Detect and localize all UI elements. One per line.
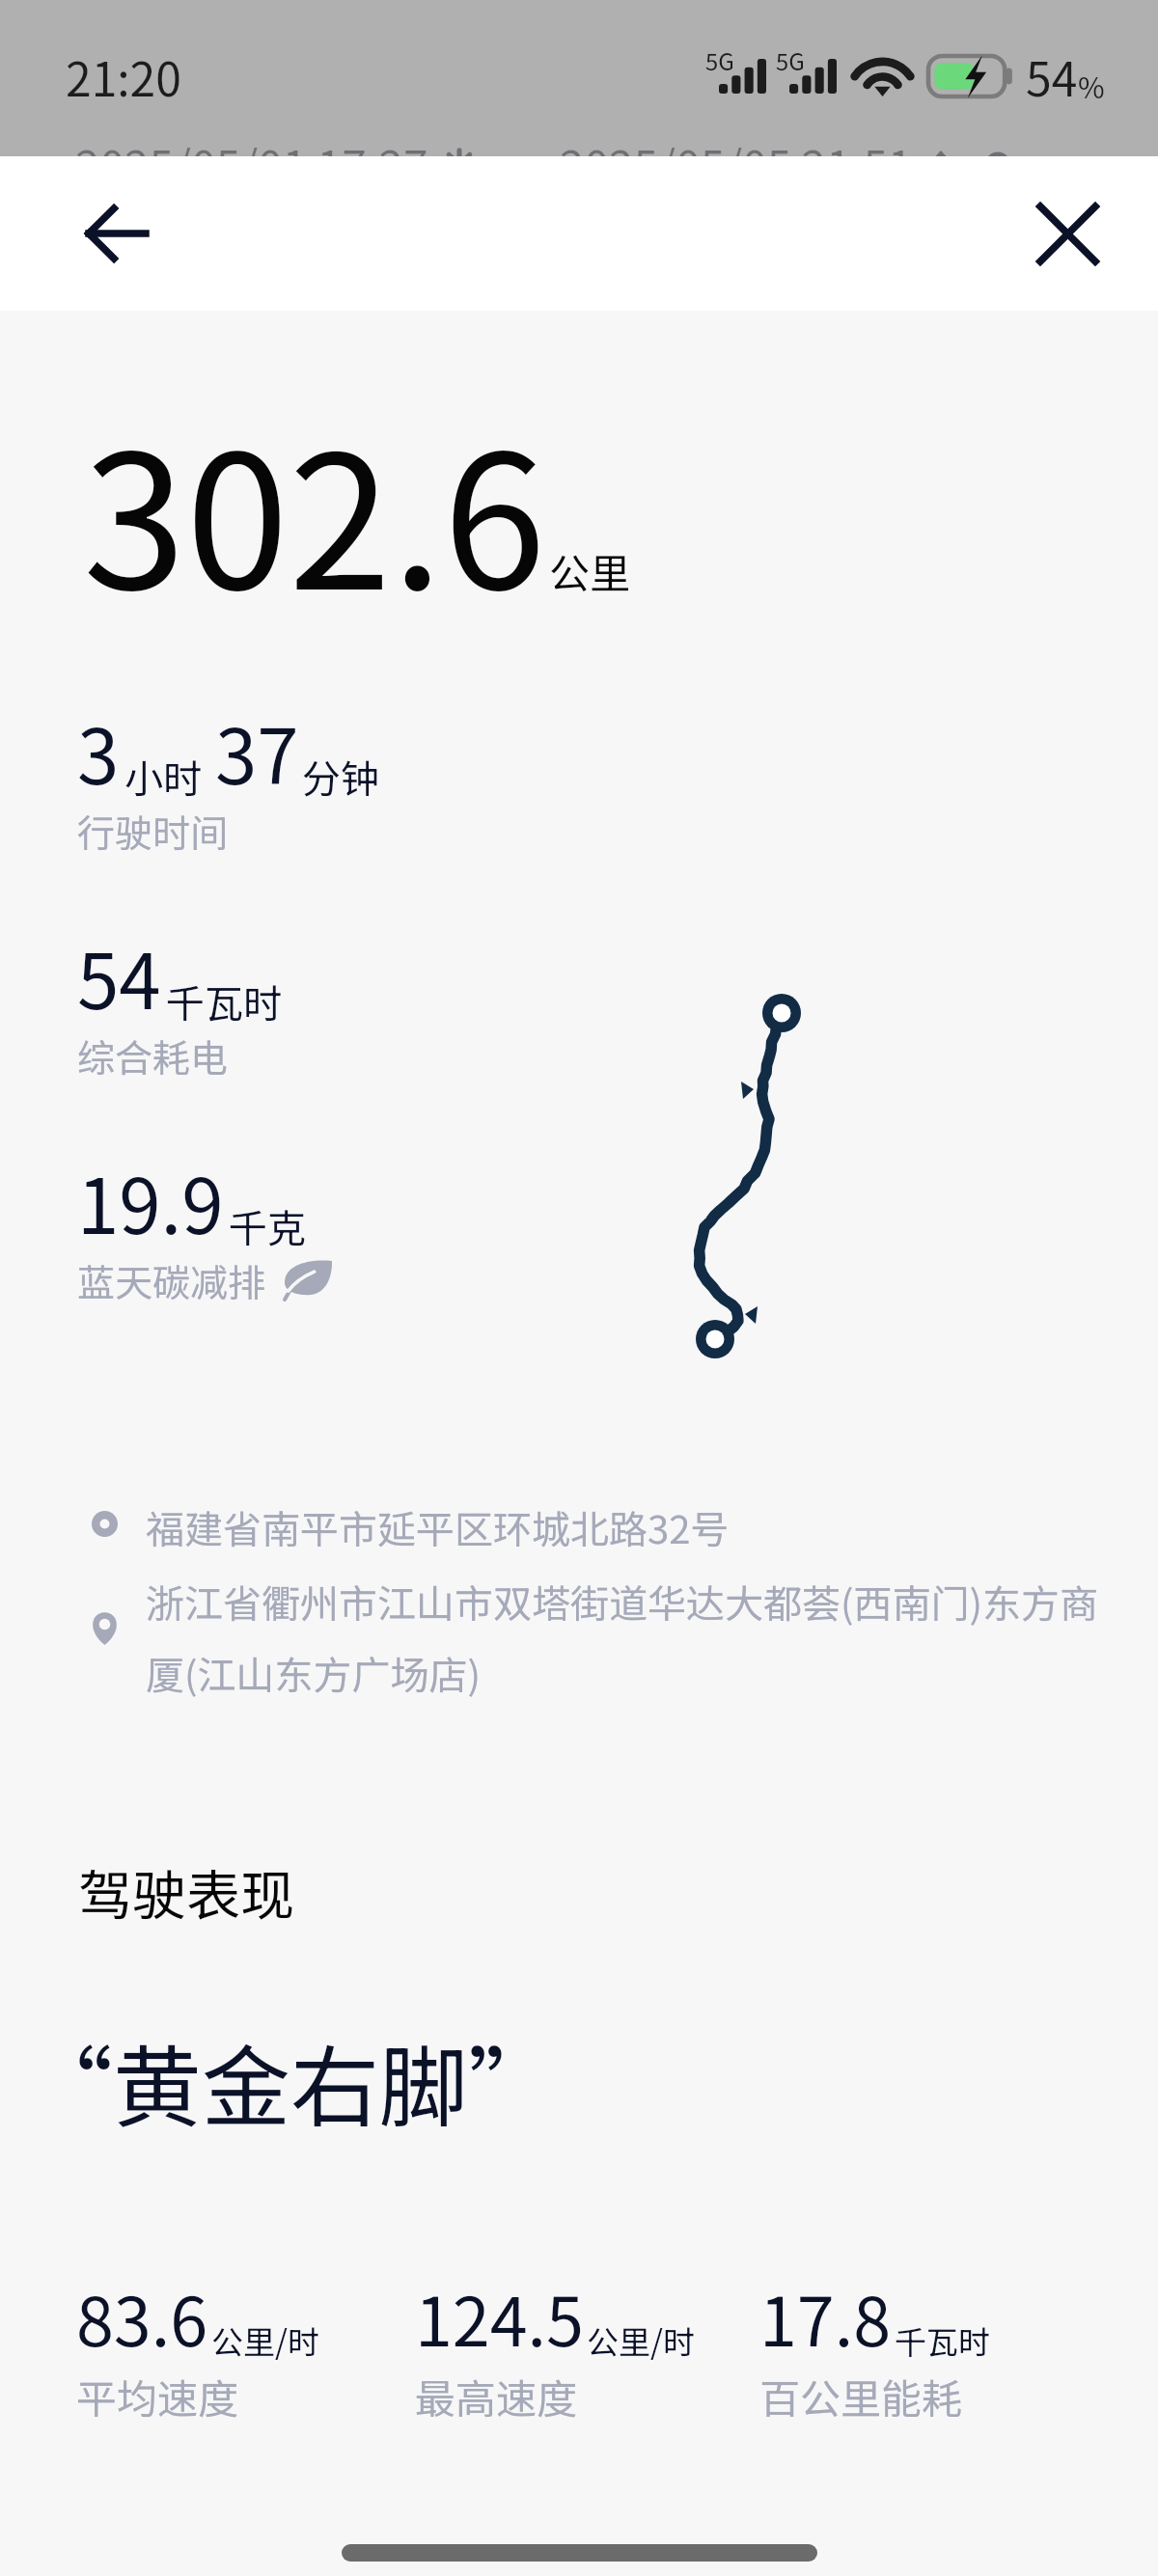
staticText: 54 [77,922,161,1031]
staticText: 浙江省衢州市江山市双塔街道华达大都荟(西南门)东方商 [146,1574,1099,1630]
staticText: 3 [77,698,120,807]
staticText: 5G [776,43,805,77]
staticText: 17.8 [759,2268,892,2366]
staticText: 公里/时 [587,2317,695,2364]
staticText: 平均速度 [76,2367,239,2425]
staticText: 2025/05/01 17:27 [75,132,428,197]
button[interactable]: Back [71,189,160,278]
staticText: 千克 [229,1198,306,1254]
staticText: 百公里能耗 [759,2367,963,2425]
staticText: 厦(江山东方广场店) [146,1645,482,1701]
staticText: 驾驶表现 [78,1852,294,1931]
staticText: 小时 [124,749,202,805]
staticText: 福建省南平市延平区环城北路32号 [146,1499,730,1555]
staticText: “黄金右脚” [24,2016,558,2145]
button[interactable]: 124.5 [409,2253,686,2350]
button[interactable]: 83.6 [70,2253,311,2350]
staticText: 分钟 [302,749,379,805]
staticText: 最高速度 [415,2367,578,2425]
staticText: 千瓦时 [895,2317,990,2364]
staticText: 302.6 [83,374,546,643]
staticText: 37 [215,698,299,807]
staticText: 2025/05/05 21:51 [560,132,913,197]
staticText: 千瓦时 [166,973,282,1029]
button[interactable]: 17.8 [754,2253,981,2350]
staticText: 公里 [549,541,631,600]
staticText: 54 [1026,42,1078,110]
staticText: 5G [705,43,734,77]
staticText: 21:20 [66,42,181,110]
staticText: 蓝天碳减排 [77,1253,266,1307]
staticText: % [1078,65,1105,106]
staticText: 83.6 [76,2268,208,2366]
staticText: 综合耗电 [77,1028,229,1082]
staticText: 行驶时间 [77,804,229,858]
staticText: 124.5 [415,2268,584,2366]
staticText: 公里/时 [211,2317,319,2364]
button[interactable]: Close [1023,189,1112,278]
staticText: 19.9 [77,1147,224,1256]
